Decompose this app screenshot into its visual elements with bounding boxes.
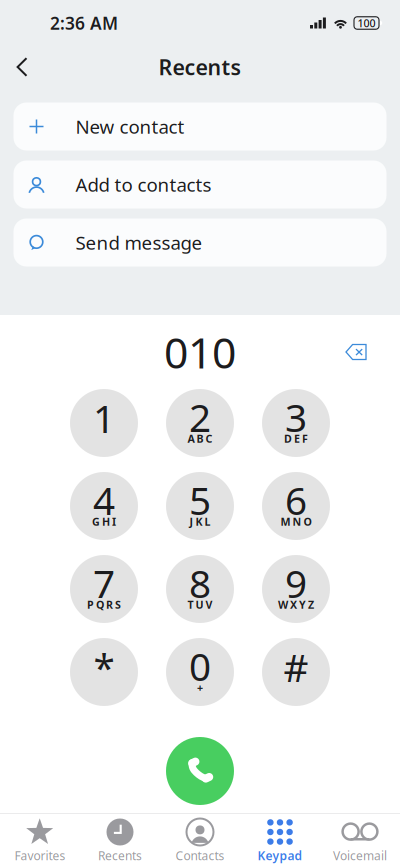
staticText: Recents [158, 53, 241, 81]
staticText: W X Y Z [278, 597, 314, 612]
staticText: A B C [187, 431, 212, 446]
staticText: Voicemail [333, 848, 387, 863]
button[interactable]: 2 [152, 389, 248, 457]
button[interactable]: Keypad [240, 813, 320, 866]
button[interactable]: Back [6, 46, 38, 88]
staticText: New contact [75, 114, 184, 139]
staticText: 8 [189, 557, 211, 609]
staticText: Favorites [14, 848, 65, 863]
staticText: 2 [189, 391, 211, 443]
button[interactable]: 8 [152, 555, 248, 623]
button[interactable]: 3 [248, 389, 344, 457]
staticText: 010 [164, 324, 236, 380]
button[interactable]: * [56, 638, 152, 706]
staticText: M N O [280, 514, 311, 529]
staticText: # [283, 641, 308, 693]
button[interactable]: 5 [152, 472, 248, 540]
button[interactable]: Favorites [0, 813, 80, 866]
button[interactable]: 7 [56, 555, 152, 623]
staticText: 5 [189, 474, 211, 526]
button[interactable]: Send message [13, 218, 386, 266]
staticText: 1 [93, 392, 115, 444]
button[interactable]: 1 [56, 389, 152, 457]
button[interactable]: Contacts [160, 813, 240, 866]
button[interactable]: Recents [80, 813, 160, 866]
staticText: Add to contacts [75, 172, 211, 197]
staticText: D E F [284, 431, 308, 446]
staticText: Send message [75, 230, 202, 255]
button[interactable]: 6 [248, 472, 344, 540]
button[interactable]: 0 [152, 638, 248, 706]
button[interactable]: Delete [336, 334, 376, 369]
staticText: * [93, 641, 114, 693]
staticText: 7 [93, 557, 115, 609]
button[interactable]: Add to contacts [13, 160, 386, 208]
staticText: 4 [93, 474, 115, 526]
staticText: G H I [92, 514, 116, 529]
button[interactable]: # [248, 638, 344, 706]
button[interactable]: Voicemail [320, 813, 400, 866]
staticText: 6 [285, 474, 307, 526]
staticText: + [197, 680, 203, 695]
staticText: 0 [189, 640, 211, 692]
button[interactable]: Call [166, 737, 234, 805]
staticText: P Q R S [87, 597, 121, 612]
staticText: Contacts [175, 848, 224, 863]
staticText: 9 [285, 557, 307, 609]
staticText: J K L [189, 514, 210, 529]
staticText: T U V [187, 597, 212, 612]
staticText: 3 [285, 391, 307, 443]
staticText: 2:36 AM [50, 11, 118, 34]
button[interactable]: 4 [56, 472, 152, 540]
button[interactable]: New contact [13, 102, 386, 150]
staticText: 100 [357, 16, 375, 30]
staticText: Keypad [257, 848, 302, 863]
staticText: Recents [98, 848, 142, 863]
button[interactable]: 9 [248, 555, 344, 623]
